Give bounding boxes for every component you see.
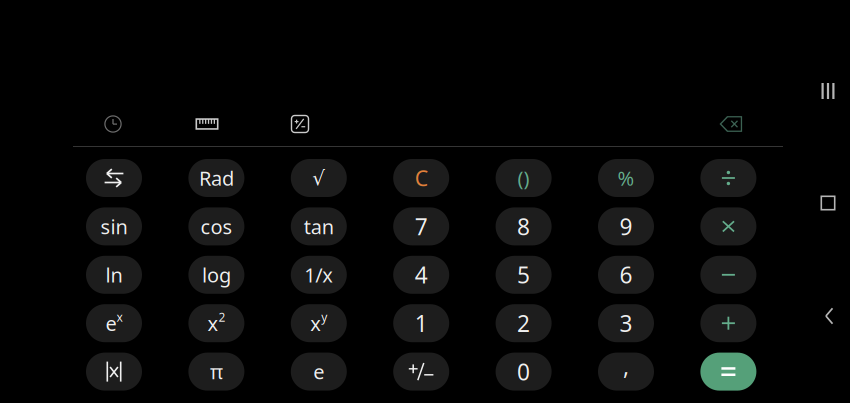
button[interactable]: Recent apps xyxy=(808,74,848,108)
button[interactable]: Absolute value xyxy=(86,353,142,391)
button[interactable]: x to the power of 2 xyxy=(188,304,244,342)
staticText: y xyxy=(321,309,327,325)
staticText: C xyxy=(415,164,428,192)
staticText: () xyxy=(518,165,530,191)
button[interactable]: e xyxy=(291,353,347,391)
staticText: x xyxy=(207,310,218,336)
button[interactable]: Multiply xyxy=(700,207,756,245)
button[interactable]: Decimal separator xyxy=(598,353,654,391)
button[interactable]: 9 xyxy=(598,207,654,245)
button[interactable]: tan xyxy=(291,207,347,245)
button[interactable]: x to the power of y xyxy=(291,304,347,342)
button[interactable]: 7 xyxy=(393,207,449,245)
button[interactable]: Home xyxy=(808,186,848,220)
button[interactable]: 5 xyxy=(496,256,552,294)
staticText: 0 xyxy=(517,356,530,387)
staticText: 1 xyxy=(415,308,428,338)
staticText: Rad xyxy=(199,165,234,191)
button[interactable]: 3 xyxy=(598,304,654,342)
button[interactable]: cos xyxy=(188,207,244,245)
button[interactable]: 0 xyxy=(496,353,552,391)
button[interactable]: Plus or minus xyxy=(393,353,449,391)
button[interactable]: sin xyxy=(86,207,142,245)
staticText: ln xyxy=(105,261,122,288)
button[interactable]: Back xyxy=(809,299,849,333)
staticText: 4 xyxy=(415,260,428,290)
button[interactable]: Calculator keypad xyxy=(278,107,322,141)
button[interactable]: ln xyxy=(86,256,142,294)
staticText: 2 xyxy=(218,309,225,325)
staticText: 8 xyxy=(517,211,530,241)
button[interactable]: √ xyxy=(291,159,347,197)
button[interactable]: Swap xyxy=(86,159,142,197)
button[interactable]: History xyxy=(91,107,135,141)
button[interactable]: Equals xyxy=(700,353,756,391)
staticText: 7 xyxy=(415,211,428,241)
button[interactable]: 1 xyxy=(393,304,449,342)
staticText: e xyxy=(105,310,116,336)
staticText: 2 xyxy=(517,308,530,338)
staticText: % xyxy=(617,165,634,191)
button[interactable]: Plus xyxy=(700,304,756,342)
staticText: , xyxy=(623,351,629,381)
button[interactable]: () xyxy=(496,159,552,197)
staticText: 3 xyxy=(619,308,632,338)
staticText: cos xyxy=(200,213,232,240)
button[interactable]: Minus xyxy=(700,256,756,294)
staticText: log xyxy=(202,261,231,288)
button[interactable]: 1/x xyxy=(291,256,347,294)
button[interactable]: e to the power of x xyxy=(86,304,142,342)
button[interactable]: Divide xyxy=(700,159,756,197)
button[interactable]: 8 xyxy=(496,207,552,245)
staticText: 9 xyxy=(619,211,632,241)
staticText: 5 xyxy=(517,260,530,290)
button[interactable]: Backspace xyxy=(709,107,753,141)
staticText: tan xyxy=(304,213,334,240)
staticText: 6 xyxy=(619,260,632,290)
staticText: 1/x xyxy=(304,261,333,288)
button[interactable]: % xyxy=(598,159,654,197)
button[interactable]: Rad xyxy=(188,159,244,197)
button[interactable]: 2 xyxy=(496,304,552,342)
staticText: π xyxy=(210,358,223,385)
button[interactable]: Unit converter xyxy=(185,107,229,141)
staticText: x xyxy=(310,310,321,336)
button[interactable]: 4 xyxy=(393,256,449,294)
button[interactable]: C xyxy=(393,159,449,197)
staticText: √ xyxy=(312,167,325,189)
button[interactable]: log xyxy=(188,256,244,294)
button[interactable]: π xyxy=(188,353,244,391)
staticText: x xyxy=(116,309,122,325)
staticText: sin xyxy=(100,213,127,240)
staticText: e xyxy=(313,358,324,385)
button[interactable]: 6 xyxy=(598,256,654,294)
